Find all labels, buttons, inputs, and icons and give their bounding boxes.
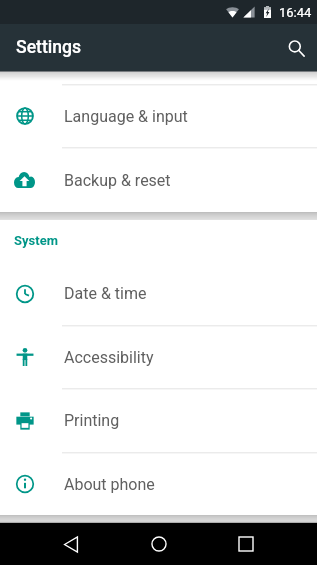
- staticText: Date & time: [64, 284, 147, 303]
- staticText: System: [14, 233, 58, 248]
- button[interactable]: Backup & reset: [0, 148, 317, 212]
- staticText: About phone: [64, 475, 155, 494]
- staticText: 16:44: [279, 5, 312, 20]
- staticText: Settings: [16, 37, 82, 58]
- staticText: Backup & reset: [64, 171, 171, 190]
- staticText: Accessibility: [64, 348, 154, 367]
- button[interactable]: Recents: [223, 523, 269, 565]
- staticText: Language & input: [64, 107, 188, 126]
- staticText: Printing: [64, 411, 120, 430]
- button[interactable]: Home: [136, 523, 182, 565]
- button[interactable]: Date & time: [0, 262, 317, 325]
- button[interactable]: Language & input: [0, 85, 317, 147]
- button[interactable]: Back: [48, 523, 94, 565]
- button[interactable]: Search: [276, 28, 316, 68]
- button[interactable]: Printing: [0, 389, 317, 452]
- button[interactable]: About phone: [0, 453, 317, 515]
- button[interactable]: Accessibility: [0, 326, 317, 388]
